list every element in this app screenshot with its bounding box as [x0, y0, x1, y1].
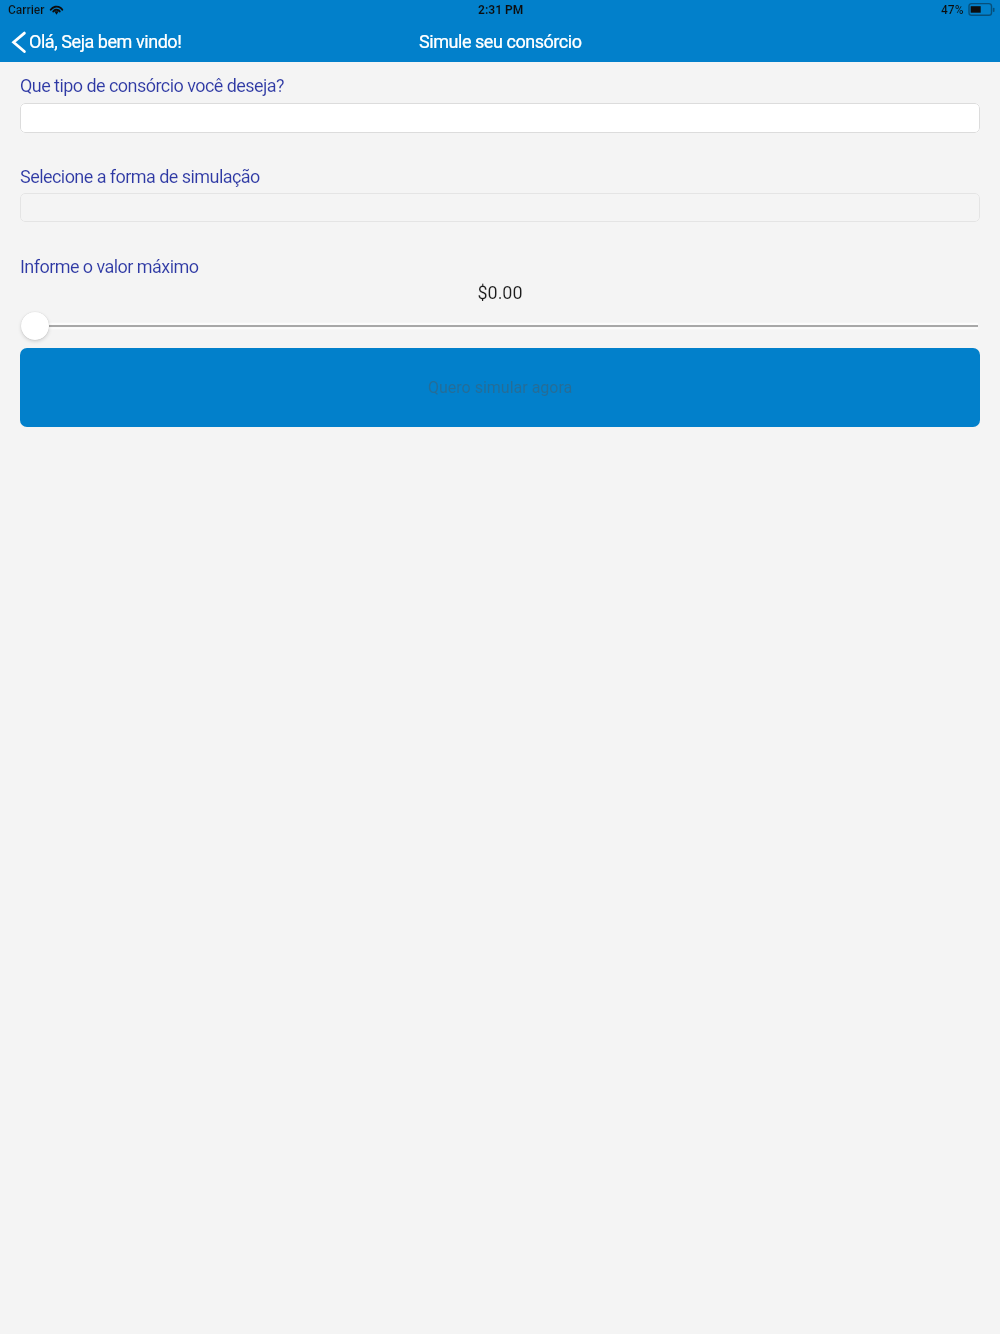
staticText: Olá, Seja bem vindo! [29, 31, 182, 52]
button[interactable]: Forma de simulação [20, 193, 980, 222]
button[interactable]: Quero simular agora [20, 348, 980, 427]
staticText: $0.00 [0, 282, 1000, 303]
staticText: Informe o valor máximo [20, 256, 199, 277]
button[interactable]: Valor máximo slider [21, 312, 49, 340]
button[interactable]: Tipo de consórcio [20, 103, 980, 133]
staticText: Simule seu consórcio [419, 31, 582, 52]
staticText: Quero simular agora [428, 378, 573, 397]
staticText: Selecione a forma de simulação [20, 166, 260, 187]
staticText: 2:31 PM [478, 3, 524, 17]
staticText: Carrier [8, 3, 45, 17]
staticText: 47% [941, 3, 964, 17]
other: Voltar [11, 29, 26, 53]
button[interactable]: Voltar [11, 29, 182, 53]
staticText: Que tipo de consórcio você deseja? [20, 75, 284, 96]
